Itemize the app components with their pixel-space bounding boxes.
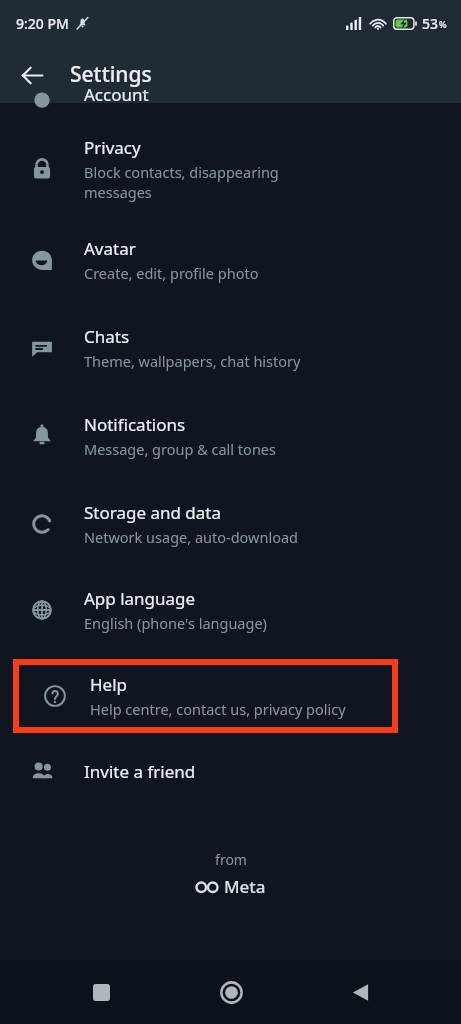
button[interactable]: App language <box>0 568 461 652</box>
button[interactable]: Recent apps <box>72 963 130 1021</box>
staticText: Help centre, contact us, privacy policy <box>90 699 346 719</box>
staticText: Avatar <box>84 237 136 260</box>
staticText: Privacy <box>84 136 141 159</box>
staticText: from <box>215 850 247 869</box>
button[interactable]: Chats <box>0 304 461 392</box>
staticText: English (phone's language) <box>84 613 267 633</box>
staticText: Chats <box>84 325 130 348</box>
button[interactable]: Back <box>331 963 389 1021</box>
staticText: 53 <box>422 14 439 33</box>
staticText: Block contacts, disappearing messages <box>84 162 279 202</box>
staticText: Help <box>90 673 128 696</box>
staticText: % <box>439 18 447 30</box>
button[interactable]: Help <box>19 665 392 727</box>
staticText: Meta <box>224 875 266 898</box>
button[interactable]: Home <box>202 963 260 1021</box>
button[interactable]: Notifications <box>0 392 461 480</box>
staticText: Theme, wallpapers, chat history <box>84 351 301 371</box>
button[interactable]: Storage and data <box>0 480 461 568</box>
staticText: Invite a friend <box>84 760 196 783</box>
staticText: App language <box>84 587 196 610</box>
staticText: Create, edit, profile photo <box>84 263 259 283</box>
staticText: Storage and data <box>84 501 222 524</box>
staticText: Notifications <box>84 413 186 436</box>
button[interactable]: Back <box>8 51 56 99</box>
staticText: 9:20 PM <box>16 14 69 33</box>
button[interactable]: Avatar <box>0 216 461 304</box>
staticText: Account <box>84 83 149 101</box>
staticText: Network usage, auto-download <box>84 527 298 547</box>
button[interactable]: Privacy <box>0 121 461 216</box>
staticText: Message, group & call tones <box>84 439 276 459</box>
button[interactable]: Invite a friend <box>0 740 461 802</box>
staticText: Settings <box>70 60 152 89</box>
